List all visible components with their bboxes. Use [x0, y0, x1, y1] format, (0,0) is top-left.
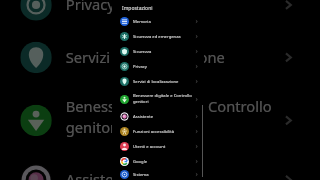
button[interactable]: Memoria	[112, 14, 204, 29]
staticText: genitori	[133, 99, 149, 105]
staticText: Memoria	[133, 19, 151, 25]
button[interactable]: Servizi di localizzazione	[112, 74, 204, 89]
staticText: Benessere digitale e Controllo	[66, 98, 272, 119]
button[interactable]: Privacy	[112, 59, 204, 74]
staticText: Privacy	[66, 0, 115, 17]
staticText: Servizi di localizzazione	[66, 49, 227, 70]
button[interactable]: Sistema	[112, 169, 204, 180]
staticText: Assistente	[66, 171, 139, 180]
button[interactable]: Benessere digitale e Controllo	[0, 84, 314, 154]
staticText: genitori	[66, 119, 122, 140]
button[interactable]: Benessere digitale e Controllo	[112, 89, 204, 109]
staticText: Funzioni accessibilità	[133, 129, 175, 135]
button[interactable]: Servizi di localizzazione	[0, 31, 314, 84]
staticText: Privacy	[133, 64, 147, 70]
button[interactable]: Sicurezza	[112, 44, 204, 59]
staticText: Servizi di localizzazione	[133, 79, 179, 85]
staticText: Sicurezza ed emergenza	[133, 34, 181, 40]
staticText: Sistema	[133, 172, 149, 178]
button[interactable]: Google	[112, 154, 204, 169]
staticText: Assistente	[133, 114, 154, 120]
button[interactable]: Privacy	[0, 0, 314, 31]
button[interactable]: Assistente	[112, 109, 204, 124]
staticText: Impostazioni	[122, 5, 153, 12]
staticText: Utenti e account	[133, 144, 166, 150]
button[interactable]: Sicurezza ed emergenza	[112, 29, 204, 44]
staticText: Sicurezza	[133, 49, 152, 55]
staticText: Benessere digitale e Controllo	[133, 93, 192, 99]
staticText: Google	[133, 159, 148, 165]
button[interactable]: Utenti e account	[112, 139, 204, 154]
button[interactable]: Assistente	[0, 154, 314, 180]
button[interactable]: Funzioni accessibilità	[112, 124, 204, 139]
